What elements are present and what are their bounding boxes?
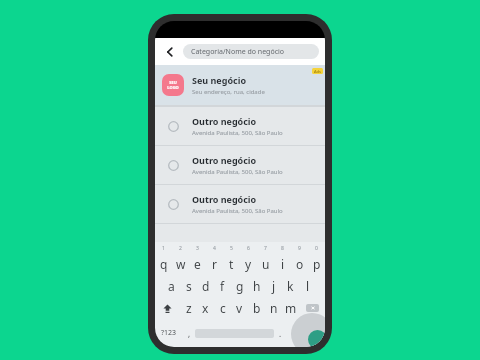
button[interactable]: j xyxy=(265,275,282,297)
staticText: . xyxy=(279,328,282,339)
button[interactable]: Shift xyxy=(155,297,180,319)
staticText: Ads xyxy=(314,69,321,74)
staticText: 7 xyxy=(264,245,267,252)
staticText: n xyxy=(270,300,278,316)
staticText: e xyxy=(194,256,201,272)
staticText: q xyxy=(160,256,168,272)
button[interactable]: . xyxy=(274,319,286,347)
button[interactable]: Outro negócio xyxy=(155,185,325,223)
button[interactable]: i xyxy=(274,253,291,275)
staticText: c xyxy=(220,300,226,316)
staticText: u xyxy=(262,256,270,272)
staticText: , xyxy=(188,328,191,339)
button[interactable]: y xyxy=(240,253,257,275)
staticText: r xyxy=(212,256,217,272)
button[interactable]: t xyxy=(223,253,240,275)
button[interactable]: u xyxy=(257,253,274,275)
button[interactable]: a xyxy=(163,275,180,297)
staticText: 9 xyxy=(298,245,301,252)
staticText: h xyxy=(253,278,261,294)
staticText: ?123 xyxy=(161,328,177,338)
staticText: 1 xyxy=(162,245,165,252)
staticText: g xyxy=(236,278,244,294)
button[interactable]: o xyxy=(291,253,308,275)
staticText: Seu negócio xyxy=(192,74,247,86)
staticText: Avenida Paulista, 500, São Paulo xyxy=(192,207,283,215)
staticText: o xyxy=(296,256,304,272)
staticText: t xyxy=(229,256,234,272)
button[interactable]: s xyxy=(180,275,197,297)
staticText: 6 xyxy=(247,245,250,252)
staticText: d xyxy=(202,278,210,294)
button[interactable]: p xyxy=(308,253,325,275)
staticText: Avenida Paulista, 500, São Paulo xyxy=(192,129,283,137)
button[interactable]: n xyxy=(265,297,282,319)
staticText: SEU LOGO xyxy=(167,80,179,90)
button[interactable]: g xyxy=(231,275,248,297)
staticText: m xyxy=(285,300,297,316)
button[interactable]: Backspace xyxy=(299,297,325,319)
button[interactable]: z xyxy=(180,297,197,319)
staticText: 8 xyxy=(281,245,284,252)
button[interactable]: b xyxy=(248,297,265,319)
button[interactable]: q xyxy=(155,253,172,275)
staticText: Categoria/Nome do negócio xyxy=(191,47,285,57)
staticText: 4 xyxy=(213,245,216,252)
staticText: Outro negócio xyxy=(192,154,257,166)
staticText: 2 xyxy=(179,245,182,252)
staticText: Avenida Paulista, 500, São Paulo xyxy=(192,168,283,176)
staticText: Seu endereço, rua, cidade xyxy=(192,88,265,96)
button[interactable]: ?123 xyxy=(155,319,183,347)
staticText: w xyxy=(176,256,186,272)
staticText: a xyxy=(168,278,175,294)
staticText: b xyxy=(253,300,261,316)
button[interactable]: k xyxy=(282,275,299,297)
button[interactable]: h xyxy=(248,275,265,297)
button[interactable]: w xyxy=(172,253,189,275)
staticText: j xyxy=(272,278,276,294)
button[interactable]: d xyxy=(197,275,214,297)
staticText: y xyxy=(245,256,252,272)
staticText: i xyxy=(281,256,285,272)
staticText: l xyxy=(306,278,310,294)
staticText: f xyxy=(220,278,225,294)
staticText: Outro negócio xyxy=(192,115,257,127)
button[interactable]: Outro negócio xyxy=(155,146,325,184)
staticText: z xyxy=(186,300,192,316)
button[interactable]: Search xyxy=(291,313,325,347)
button[interactable]: r xyxy=(206,253,223,275)
button[interactable]: Categoria/Nome do negócio xyxy=(183,44,319,59)
button[interactable]: l xyxy=(299,275,316,297)
staticText: 5 xyxy=(230,245,233,252)
staticText: k xyxy=(287,278,294,294)
button[interactable]: Back xyxy=(161,43,179,61)
staticText: 0 xyxy=(315,245,318,252)
staticText: 3 xyxy=(196,245,199,252)
button[interactable]: v xyxy=(231,297,248,319)
button[interactable]: x xyxy=(197,297,214,319)
button[interactable]: c xyxy=(214,297,231,319)
button[interactable]: e xyxy=(189,253,206,275)
button[interactable]: Ad xyxy=(312,68,323,74)
button[interactable]: , xyxy=(183,319,195,347)
staticText: x xyxy=(202,300,209,316)
button[interactable]: SEU LOGO xyxy=(155,65,325,105)
staticText: p xyxy=(313,256,321,272)
staticText: s xyxy=(186,278,192,294)
staticText: v xyxy=(236,300,243,316)
button[interactable]: f xyxy=(214,275,231,297)
staticText: Outro negócio xyxy=(192,193,257,205)
button[interactable]: Outro negócio xyxy=(155,107,325,145)
button[interactable]: m xyxy=(282,297,299,319)
